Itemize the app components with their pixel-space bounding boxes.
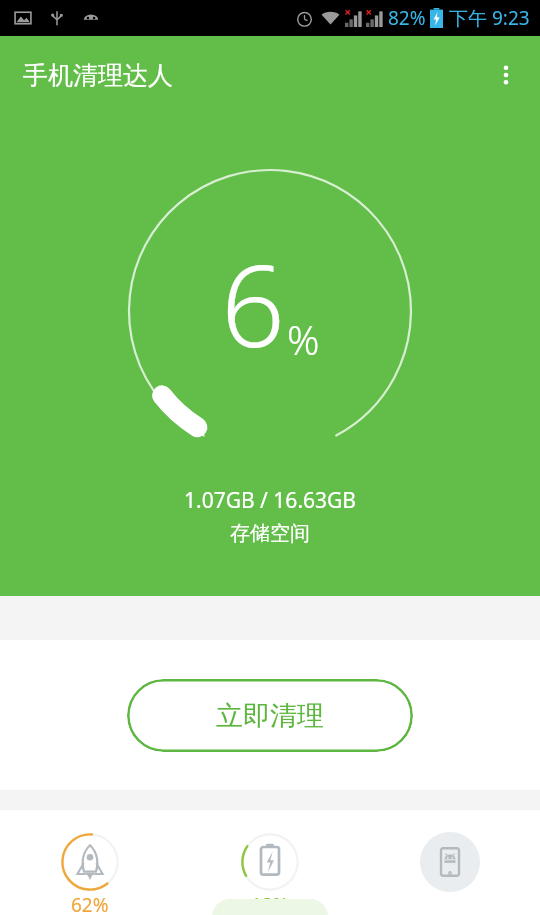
staticText: 1.07GB / 16.63GB [184,486,356,515]
staticText: 存储空间 [230,521,310,546]
staticText: 6 [221,227,285,380]
staticText: 下午 9:23 [449,5,530,31]
staticText: 18% [251,892,289,915]
staticText: 62% [71,892,109,915]
staticText: % [287,312,320,366]
button[interactable]: Boost 62 percent [0,832,180,915]
button[interactable]: 立即清理 [127,679,413,752]
button[interactable]: More options [482,51,530,99]
staticText: 立即清理 [216,699,324,733]
button[interactable]: Battery 18 percent [180,832,360,915]
button[interactable]: Phone info [360,832,540,892]
staticText: 82% [388,5,426,31]
staticText: 手机清理达人 [23,60,173,91]
